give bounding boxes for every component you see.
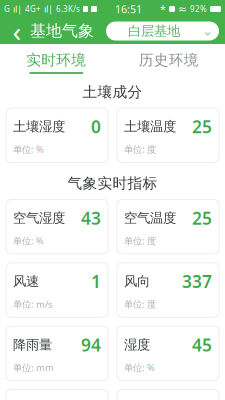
staticText: 25 — [192, 115, 212, 138]
staticText: 1 — [91, 270, 101, 293]
staticText: ıl| — [13, 3, 22, 15]
staticText: 降雨量 — [13, 337, 52, 353]
staticText: 单位: 度 — [124, 143, 156, 155]
staticText: 风速 — [13, 273, 39, 290]
button[interactable]: 历史环境 — [112, 44, 225, 74]
staticText: 6.3K/s — [56, 4, 80, 14]
staticText: * — [160, 2, 166, 16]
staticText: 土壤湿度 — [13, 118, 65, 135]
staticText: 45 — [192, 333, 212, 356]
staticText: 气象实时指标 — [67, 174, 157, 192]
button[interactable]: 风速 — [6, 263, 108, 317]
button[interactable]: 湿度 — [117, 326, 219, 381]
button[interactable]: 白层基地 — [106, 21, 219, 40]
staticText: 空气湿度 — [13, 210, 65, 226]
staticText: 92% — [190, 4, 207, 14]
staticText: 0 — [91, 115, 101, 138]
button[interactable]: 空气湿度 — [6, 199, 108, 254]
staticText: 土壤温度 — [124, 118, 176, 135]
staticText: ‹ — [12, 12, 21, 50]
staticText: ≈ — [178, 3, 187, 15]
button[interactable]: 土壤温度 — [117, 108, 219, 162]
staticText: 湿度 — [124, 337, 150, 353]
staticText: 风向 — [124, 273, 150, 290]
staticText: 单位: 度 — [124, 298, 156, 310]
button[interactable]: 返回 — [6, 18, 28, 44]
staticText: 历史环境 — [139, 51, 199, 69]
button[interactable]: 风向 — [117, 263, 219, 317]
staticText: 单位: 度 — [124, 234, 156, 247]
staticText: 94 — [81, 333, 101, 356]
staticText: 单位: mm — [13, 361, 54, 374]
staticText: 单位: m/s — [13, 298, 52, 310]
staticText: 单位: % — [13, 234, 44, 247]
staticText: 337 — [182, 270, 212, 293]
staticText: 白层基地 — [128, 23, 180, 39]
staticText: 43 — [81, 206, 101, 229]
staticText: 空气温度 — [124, 210, 176, 226]
button[interactable]: 土壤湿度 — [6, 108, 108, 162]
staticText: ıl| — [44, 3, 53, 15]
staticText: 土壤成分 — [82, 83, 142, 101]
button[interactable]: 降雨量 — [6, 326, 108, 381]
staticText: 16:51 — [115, 2, 142, 16]
staticText: ⌄ — [202, 23, 213, 38]
staticText: 4G+ — [25, 4, 41, 14]
button[interactable]: 实时环境 — [0, 44, 112, 74]
staticText: 单位: % — [13, 143, 44, 155]
staticText: 基地气象 — [30, 21, 94, 41]
staticText: 25 — [192, 206, 212, 229]
staticText: 单位: % — [124, 361, 155, 374]
staticText: 实时环境 — [26, 51, 86, 69]
staticText: G — [4, 4, 10, 14]
button[interactable]: 空气温度 — [117, 199, 219, 254]
